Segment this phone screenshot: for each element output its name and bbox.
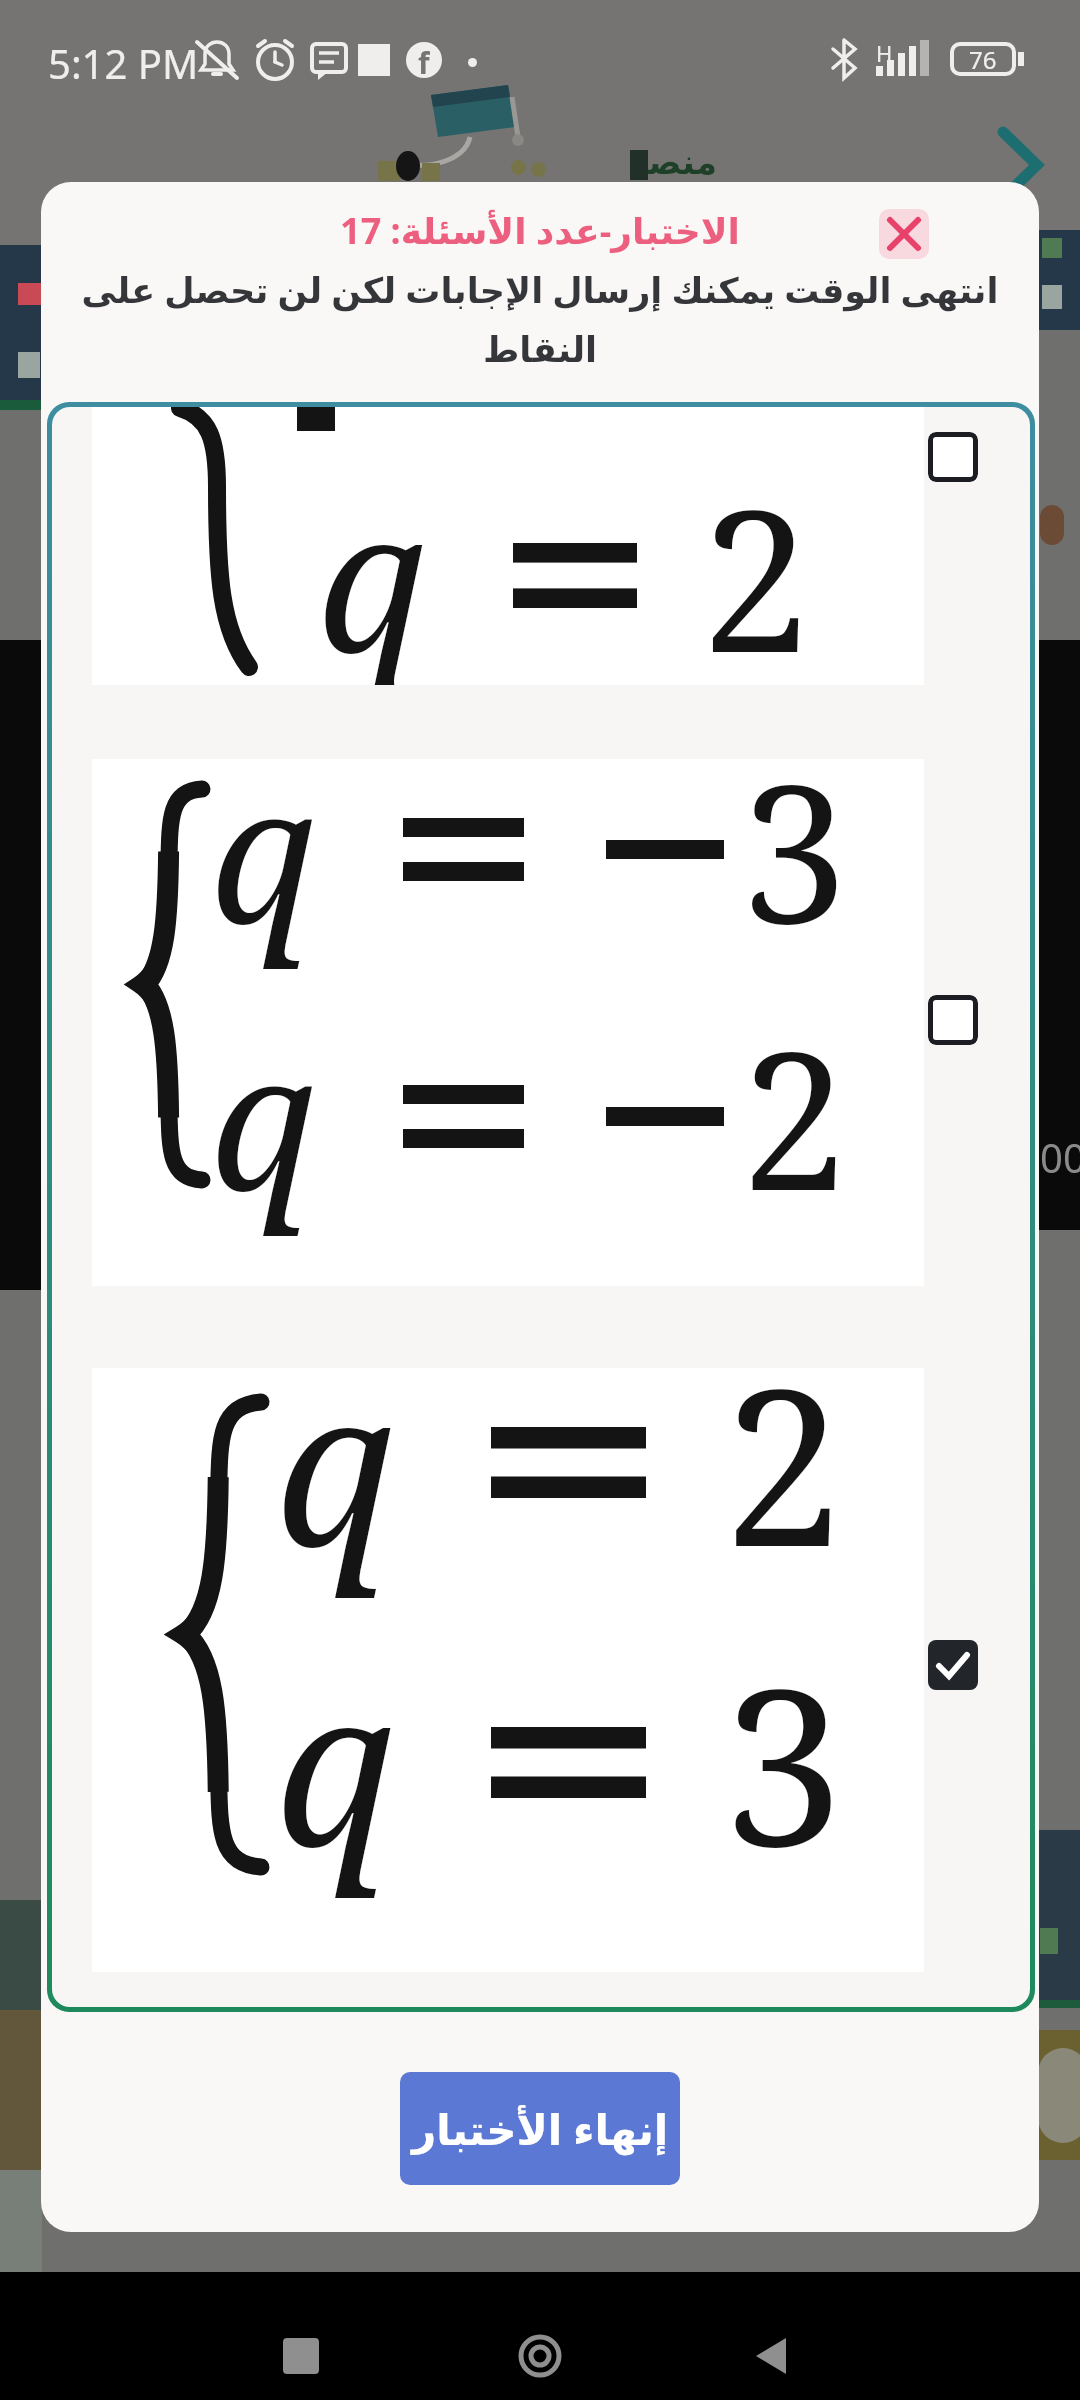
button[interactable] — [752, 2336, 792, 2376]
button[interactable]: q — [92, 759, 924, 1286]
button[interactable]: إنهاء الأختبار — [400, 2072, 680, 2185]
staticText: الاختبار-عدد الأسئلة: 17 — [41, 206, 1039, 255]
button[interactable] — [928, 995, 978, 1045]
button[interactable]: q — [92, 407, 924, 685]
staticText: منصة — [628, 142, 718, 182]
button[interactable] — [879, 209, 929, 259]
staticText: 3 — [741, 759, 848, 979]
staticText: 00 — [1040, 1130, 1080, 1184]
staticText: q — [317, 442, 427, 685]
button[interactable]: q — [92, 1368, 924, 1972]
staticText: H — [876, 38, 893, 68]
staticText: 2 — [701, 442, 811, 685]
staticText: f — [418, 42, 430, 78]
button[interactable] — [928, 1640, 978, 1690]
staticText: q — [210, 987, 317, 1246]
staticText: انتهى الوقت يمكنك إرسال الإجابات لكن لن … — [41, 266, 1039, 314]
staticText: 5:12 PM — [48, 36, 199, 90]
staticText: 3 — [723, 1616, 844, 1909]
staticText: q — [210, 759, 317, 979]
staticText: q — [275, 1616, 396, 1909]
button[interactable] — [518, 2334, 562, 2378]
staticText: النقاط — [41, 330, 1039, 371]
button[interactable] — [283, 2338, 319, 2374]
staticText: 2 — [741, 987, 848, 1246]
staticText: 76 — [969, 43, 997, 76]
button[interactable] — [928, 432, 978, 482]
staticText: 2 — [723, 1368, 844, 1609]
staticText: إنهاء الأختبار — [412, 2100, 669, 2157]
staticText: q — [275, 1368, 396, 1609]
